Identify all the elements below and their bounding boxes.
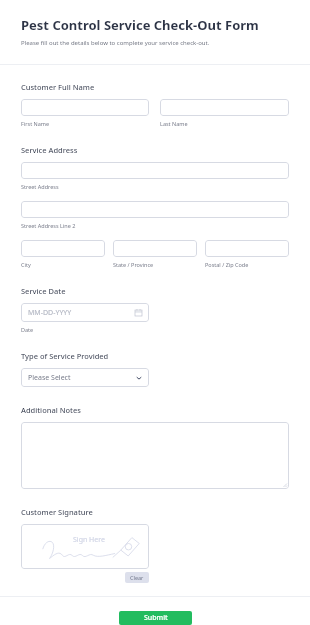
staticText: Please fill out the details below to com… bbox=[21, 39, 210, 47]
button[interactable] bbox=[160, 99, 289, 116]
staticText: Pest Control Service Check-Out Form bbox=[21, 16, 259, 34]
staticText: Customer Signature bbox=[21, 507, 93, 517]
staticText: State / Province bbox=[113, 261, 154, 268]
staticText: City bbox=[21, 261, 31, 268]
staticText: Submit bbox=[144, 613, 168, 623]
button[interactable] bbox=[21, 422, 289, 489]
button[interactable]: MM-DD-YYYY bbox=[21, 303, 149, 322]
staticText: Sign Here bbox=[73, 535, 105, 545]
staticText: First Name bbox=[21, 120, 50, 127]
button[interactable] bbox=[205, 240, 289, 257]
staticText: Street Address bbox=[21, 183, 59, 190]
staticText: Last Name bbox=[160, 120, 188, 127]
staticText: Type of Service Provided bbox=[21, 351, 109, 361]
button[interactable] bbox=[21, 99, 149, 116]
staticText: Street Address Line 2 bbox=[21, 222, 76, 229]
button[interactable]: Signature pad bbox=[21, 524, 149, 569]
staticText: Additional Notes bbox=[21, 405, 81, 415]
staticText: Customer Full Name bbox=[21, 82, 95, 92]
staticText: Date bbox=[21, 326, 34, 333]
staticText: Service Address bbox=[21, 145, 78, 155]
button[interactable] bbox=[21, 201, 289, 218]
other: Pick date bbox=[135, 309, 142, 316]
staticText: Clear bbox=[130, 574, 144, 581]
button[interactable] bbox=[21, 240, 105, 257]
button[interactable]: Submit bbox=[119, 611, 192, 625]
other: Open dropdown bbox=[136, 375, 142, 381]
staticText: MM-DD-YYYY bbox=[28, 308, 72, 318]
button[interactable]: Clear bbox=[125, 572, 149, 583]
staticText: Please Select bbox=[28, 373, 71, 383]
button[interactable] bbox=[113, 240, 197, 257]
button[interactable]: Please Select bbox=[21, 368, 149, 387]
button[interactable] bbox=[21, 162, 289, 179]
staticText: Postal / Zip Code bbox=[205, 261, 249, 268]
staticText: Service Date bbox=[21, 286, 66, 296]
